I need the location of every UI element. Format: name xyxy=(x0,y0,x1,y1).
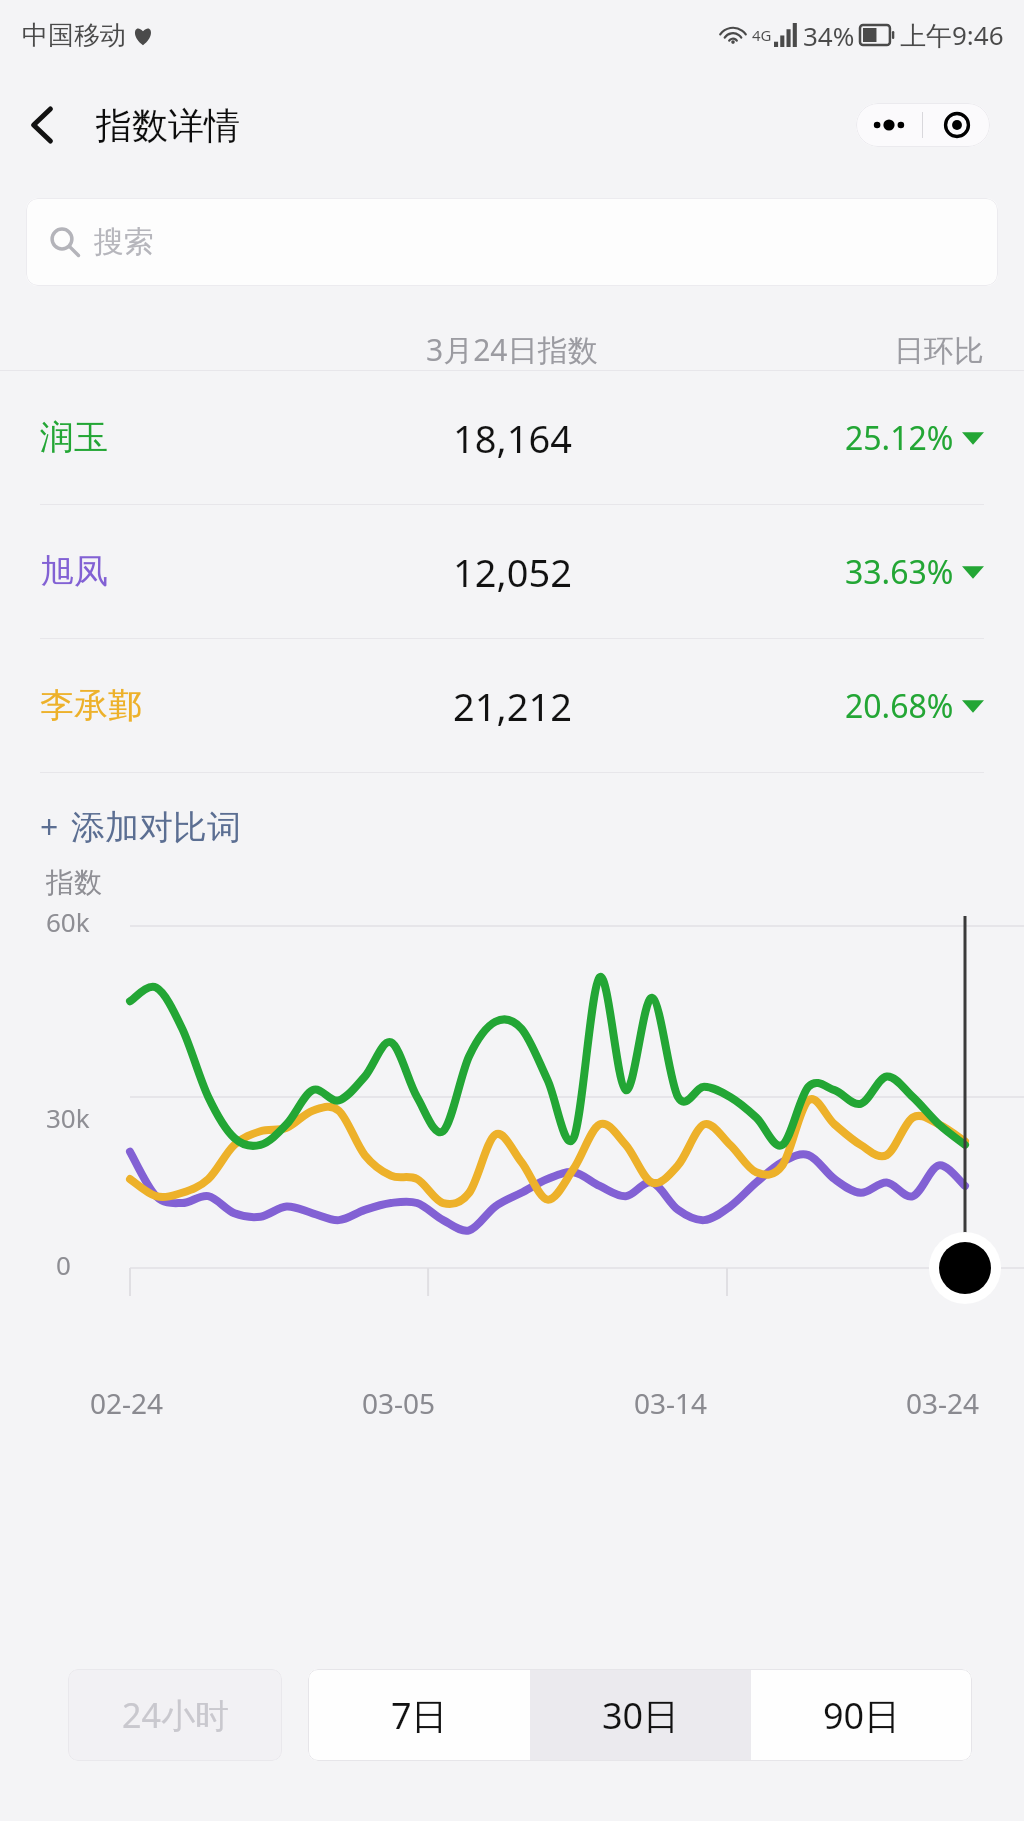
staticText: 中国移动 xyxy=(22,19,126,52)
staticText: 03-24 xyxy=(906,1384,980,1422)
staticText: 搜索 xyxy=(94,223,154,261)
staticText: 旭凤 xyxy=(40,550,108,593)
staticText: 18,164 xyxy=(453,412,572,464)
staticText: 4G xyxy=(752,25,772,45)
button[interactable]: Close xyxy=(923,103,990,147)
staticText: 12,052 xyxy=(453,546,572,598)
staticText: 60k xyxy=(46,904,90,939)
button[interactable]: + xyxy=(26,789,255,865)
staticText: 李承鄞 xyxy=(40,684,142,727)
button[interactable]: Back xyxy=(14,97,70,153)
button[interactable]: 7日 xyxy=(308,1669,530,1761)
staticText: 3月24日指数 xyxy=(426,329,598,370)
staticText: 0 xyxy=(56,1247,71,1282)
staticText: 33.63% xyxy=(845,550,954,594)
button[interactable]: 搜索 xyxy=(26,198,998,286)
staticText: 上午9:46 xyxy=(900,17,1004,53)
staticText: 20.68% xyxy=(845,684,954,728)
staticText: 02-24 xyxy=(90,1384,164,1422)
staticText: 30日 xyxy=(602,1691,680,1740)
button[interactable]: 24小时 xyxy=(68,1669,282,1761)
staticText: 25.12% xyxy=(845,416,954,460)
button[interactable]: More xyxy=(856,103,922,147)
button[interactable]: 30日 xyxy=(530,1669,751,1761)
staticText: 24小时 xyxy=(122,1692,229,1738)
staticText: 21,212 xyxy=(453,680,572,732)
staticText: 03-14 xyxy=(634,1384,708,1422)
staticText: 03-05 xyxy=(362,1384,436,1422)
staticText: 指数 xyxy=(46,865,102,900)
staticText: + xyxy=(40,805,59,849)
staticText: 日环比 xyxy=(894,332,984,370)
staticText: 添加对比词 xyxy=(71,806,241,849)
button[interactable]: 李承鄞 xyxy=(0,639,1024,772)
button[interactable]: 润玉 xyxy=(0,371,1024,504)
staticText: 34% xyxy=(803,18,855,53)
button[interactable]: 90日 xyxy=(751,1669,972,1761)
staticText: 30k xyxy=(46,1100,90,1135)
staticText: 90日 xyxy=(823,1691,901,1740)
staticText: 7日 xyxy=(391,1691,448,1740)
staticText: 润玉 xyxy=(40,416,108,459)
staticText: 指数详情 xyxy=(96,103,240,148)
button[interactable]: 旭凤 xyxy=(0,505,1024,638)
